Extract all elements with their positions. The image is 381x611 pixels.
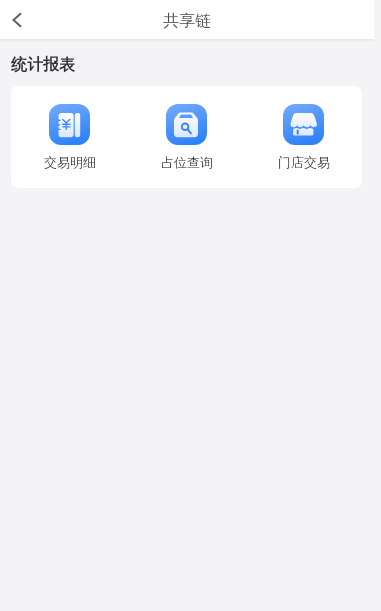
staticText: 门店交易: [278, 154, 330, 170]
button[interactable]: 门店交易: [245, 86, 362, 170]
button[interactable]: 交易明细: [11, 86, 128, 170]
button[interactable]: Back: [0, 3, 34, 37]
staticText: 共享链: [163, 11, 211, 31]
staticText: 占位查询: [161, 154, 213, 170]
staticText: 统计报表: [11, 55, 75, 75]
staticText: 交易明细: [44, 154, 96, 170]
button[interactable]: 占位查询: [128, 86, 245, 170]
